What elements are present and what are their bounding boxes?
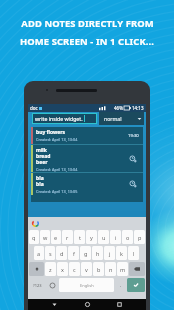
staticText: 14:13 <box>132 105 144 111</box>
staticText: . <box>120 282 122 289</box>
staticText: normal <box>104 115 122 122</box>
staticText: s <box>49 250 52 257</box>
button[interactable]: Home <box>82 299 93 310</box>
button[interactable]: Set alarm <box>123 127 143 144</box>
button[interactable]: ?123 <box>29 278 46 292</box>
button[interactable]: h <box>92 246 103 260</box>
staticText: 19:30 <box>128 133 139 139</box>
button[interactable]: Recents <box>114 299 125 310</box>
button[interactable]: s <box>45 246 55 260</box>
button[interactable]: Done <box>127 278 145 292</box>
staticText: w <box>43 234 48 241</box>
staticText: g <box>84 250 88 257</box>
staticText: q <box>32 234 36 241</box>
button[interactable]: buy flowers <box>31 127 143 144</box>
staticText: i <box>115 234 117 241</box>
button[interactable]: x <box>57 262 68 276</box>
staticText: j <box>109 250 111 257</box>
button[interactable]: a <box>34 246 44 260</box>
button[interactable]: English <box>59 278 114 292</box>
button[interactable]: milk bread beer <box>31 145 143 172</box>
staticText: n <box>109 266 113 273</box>
staticText: HOME SCREEN - IN 1 CLICK... <box>20 35 154 48</box>
staticText: English <box>80 283 94 288</box>
button[interactable]: normal <box>99 112 144 125</box>
button[interactable]: u <box>98 230 109 244</box>
staticText: 46% <box>114 105 123 111</box>
staticText: y <box>90 234 93 241</box>
button[interactable]: k <box>116 246 127 260</box>
other: Google <box>32 220 39 227</box>
staticText: p <box>138 234 142 241</box>
button[interactable]: write inside widget. <box>32 113 97 124</box>
button[interactable]: Set alarm <box>123 173 143 195</box>
button[interactable]: t <box>74 230 85 244</box>
button[interactable]: d <box>56 246 67 260</box>
other: Dropdown <box>137 116 142 121</box>
button[interactable]: . <box>115 278 126 292</box>
button[interactable]: m <box>117 262 128 276</box>
button[interactable]: c <box>69 262 80 276</box>
button[interactable]: Shift <box>29 262 44 276</box>
staticText: bla bla <box>36 175 44 188</box>
button[interactable]: Back <box>49 299 60 310</box>
staticText: k <box>120 250 123 257</box>
staticText: ?123 <box>33 283 42 288</box>
staticText: Created: April 13, 13:04 <box>36 137 78 142</box>
button[interactable]: bla bla <box>31 173 143 195</box>
button[interactable]: v <box>81 262 92 276</box>
staticText: m <box>120 266 126 273</box>
button[interactable]: z <box>45 262 56 276</box>
staticText: t <box>79 234 81 241</box>
button[interactable]: f <box>68 246 79 260</box>
staticText: e <box>54 234 58 241</box>
staticText: c <box>73 266 76 273</box>
button[interactable]: j <box>104 246 115 260</box>
staticText: v <box>85 266 88 273</box>
staticText: b <box>97 266 101 273</box>
staticText: Created: April 13, 13:05 <box>36 189 78 194</box>
button[interactable]: q <box>29 230 39 244</box>
staticText: buy flowers <box>36 129 66 136</box>
button[interactable]: o <box>122 230 133 244</box>
button[interactable]: g <box>80 246 91 260</box>
button[interactable]: w <box>40 230 50 244</box>
button[interactable]: i <box>110 230 121 244</box>
staticText: x <box>61 266 64 273</box>
staticText: l <box>133 250 135 257</box>
staticText: Created: April 13, 13:04 <box>36 167 78 172</box>
staticText: d <box>60 250 64 257</box>
button[interactable]: y <box>86 230 97 244</box>
button[interactable]: Backspace <box>129 262 145 276</box>
button[interactable]: p <box>134 230 145 244</box>
button[interactable]: l <box>128 246 139 260</box>
button[interactable]: Set alarm <box>123 145 143 172</box>
staticText: ADD NOTES DIRECTLY FROM <box>21 17 154 30</box>
staticText: u <box>102 234 106 241</box>
staticText: write inside widget. <box>35 115 83 122</box>
staticText: o <box>126 234 130 241</box>
staticText: z <box>49 266 52 273</box>
button[interactable]: b <box>93 262 104 276</box>
staticText: a <box>37 250 41 257</box>
button[interactable]: r <box>62 230 73 244</box>
button[interactable]: Emoji <box>47 278 58 292</box>
staticText: h <box>96 250 100 257</box>
staticText: f <box>73 250 75 257</box>
button[interactable]: e <box>51 230 61 244</box>
button[interactable]: n <box>105 262 116 276</box>
staticText: r <box>66 234 69 241</box>
staticText: milk bread beer <box>36 147 51 166</box>
staticText: doc <box>30 105 38 111</box>
